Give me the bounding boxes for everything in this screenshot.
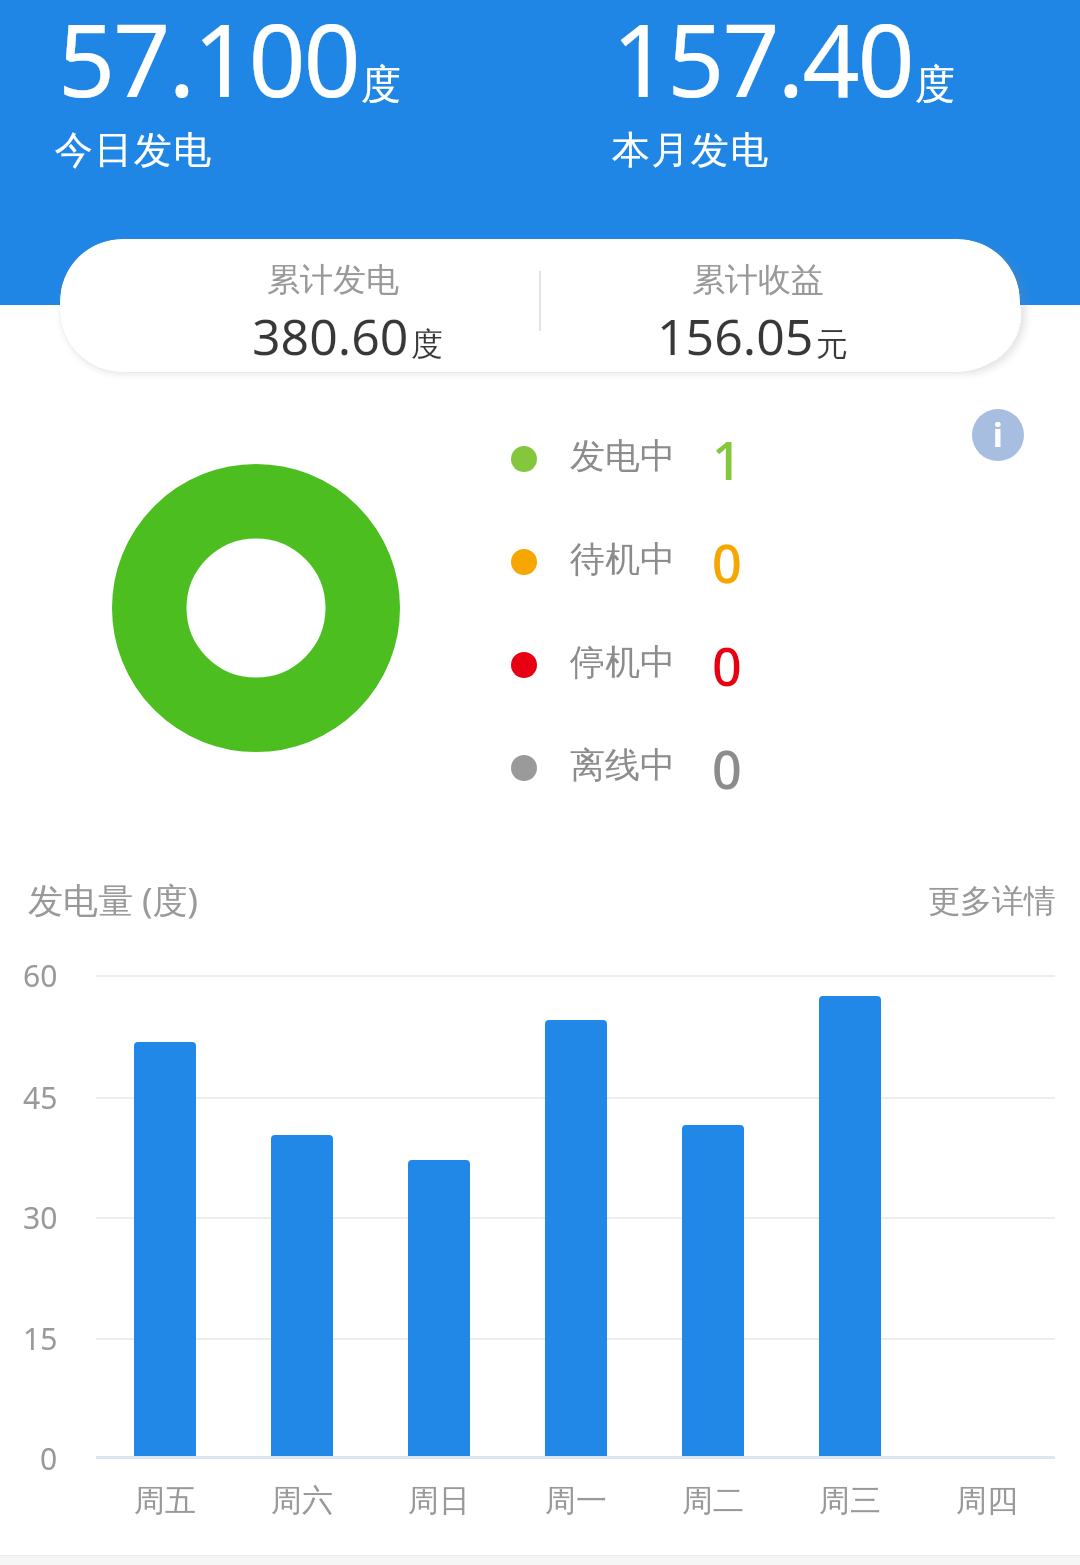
staticText: 今日发电	[54, 126, 212, 174]
staticText: 45	[23, 1077, 58, 1118]
staticText: 周四	[956, 1481, 1018, 1520]
staticText: 停机中	[570, 640, 675, 684]
staticText: 待机中	[570, 537, 675, 581]
staticText: 0	[712, 733, 742, 804]
staticText: 度	[411, 324, 443, 364]
staticText: 30	[23, 1197, 58, 1238]
staticText: 周日	[408, 1481, 470, 1520]
staticText: 周六	[271, 1481, 333, 1520]
staticText: i	[993, 413, 1003, 457]
staticText: 离线中	[570, 743, 675, 787]
staticText: 周三	[819, 1481, 881, 1520]
staticText: 15	[23, 1318, 58, 1359]
button[interactable]: i	[972, 409, 1024, 461]
staticText: 发电量 (度)	[28, 876, 199, 924]
staticText: 累计收益	[692, 259, 824, 301]
staticText: 380.60	[252, 302, 409, 370]
staticText: 度	[361, 59, 401, 109]
staticText: 0	[712, 630, 742, 701]
staticText: 0	[712, 527, 742, 598]
staticText: 157.40	[612, 0, 913, 126]
staticText: 累计发电	[267, 259, 399, 301]
staticText: 更多详情	[928, 881, 1056, 921]
button[interactable]: 更多详情	[886, 869, 1056, 933]
staticText: 0	[40, 1438, 58, 1479]
staticText: 周一	[545, 1481, 607, 1520]
staticText: 发电中	[570, 434, 675, 478]
staticText: 57.100	[58, 0, 359, 126]
staticText: 周五	[134, 1481, 196, 1520]
staticText: 1	[712, 424, 742, 495]
staticText: 60	[23, 955, 58, 996]
staticText: 度	[915, 59, 955, 109]
staticText: 156.05	[657, 302, 814, 370]
button[interactable]	[60, 239, 1020, 372]
staticText: 元	[816, 324, 848, 364]
staticText: 本月发电	[611, 126, 769, 174]
staticText: 周二	[682, 1481, 744, 1520]
